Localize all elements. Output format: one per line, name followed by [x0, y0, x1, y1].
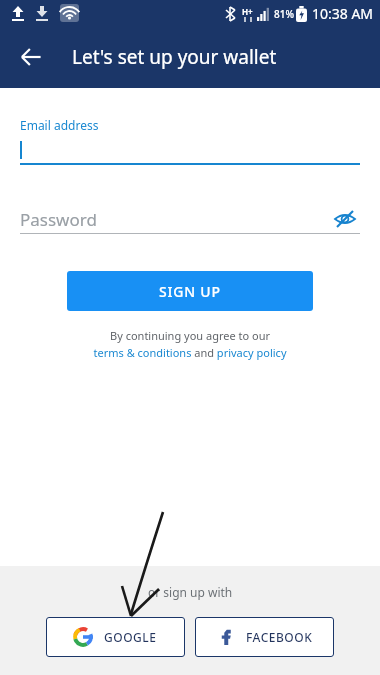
button[interactable]: Back — [8, 34, 54, 80]
staticText: Password — [20, 208, 97, 231]
staticText: GOOGLE — [104, 629, 157, 645]
button[interactable]: Show password — [330, 205, 360, 233]
button[interactable]: terms & conditions and privacy policy — [20, 345, 360, 360]
staticText: SIGN UP — [159, 282, 221, 301]
button[interactable]: GOOGLE — [46, 617, 185, 657]
staticText: Email address — [20, 117, 99, 133]
staticText: H+ — [242, 6, 253, 17]
staticText: 10:38 AM — [312, 4, 374, 23]
staticText: 81% — [274, 7, 294, 21]
button[interactable] — [20, 139, 360, 163]
button[interactable]: FACEBOOK — [195, 617, 334, 657]
button[interactable]: Password — [20, 205, 360, 233]
button[interactable]: SIGN UP — [67, 271, 313, 311]
staticText: or sign up with — [148, 584, 233, 600]
staticText: FACEBOOK — [246, 629, 313, 645]
staticText: By continuing you agree to our — [20, 328, 360, 343]
staticText: Let's set up your wallet — [72, 44, 277, 70]
